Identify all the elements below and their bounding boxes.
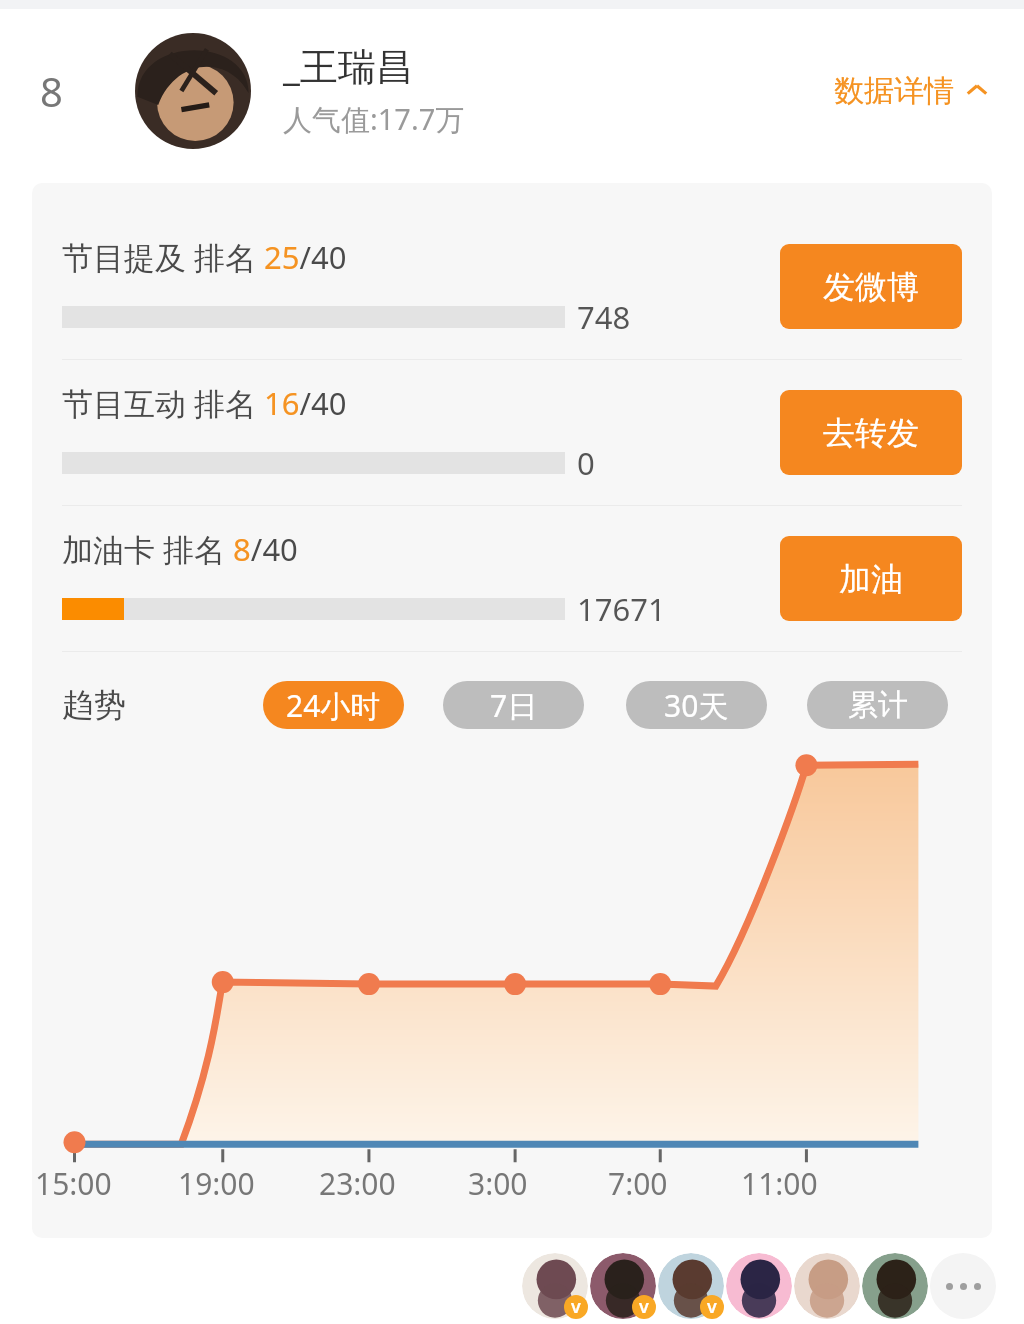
staticText: 24小时 <box>286 685 381 726</box>
staticText: 0 <box>577 442 595 484</box>
staticText: 3:00 <box>468 1163 528 1204</box>
staticText: 23:00 <box>319 1163 396 1204</box>
staticText: 8 <box>40 64 63 118</box>
staticText: 发微博 <box>823 267 919 307</box>
staticText: V <box>639 1297 649 1317</box>
button[interactable]: 30天 <box>626 681 767 729</box>
button[interactable]: Fan avatar 5 <box>794 1253 860 1319</box>
staticText: _王瑞昌 <box>283 39 414 91</box>
button[interactable]: Fan avatar 4 <box>726 1253 792 1319</box>
button[interactable]: Fan avatar 6 <box>862 1253 928 1319</box>
staticText: 15:00 <box>35 1163 112 1204</box>
staticText: 7:00 <box>608 1163 668 1204</box>
staticText: V <box>571 1297 581 1317</box>
button[interactable]: 7日 <box>443 681 584 729</box>
button[interactable]: Fan avatar 2 <box>590 1253 656 1319</box>
staticText: 人气值:17.7万 <box>283 99 465 139</box>
button[interactable]: 发微博 <box>780 244 962 329</box>
staticText: 数据详情 <box>834 72 954 110</box>
staticText: 累计 <box>848 686 908 724</box>
staticText: 加油卡 排名 8/40 <box>62 528 298 570</box>
button[interactable]: Fan avatar 1 <box>522 1253 588 1319</box>
staticText: 19:00 <box>178 1163 255 1204</box>
button[interactable]: More fans <box>930 1253 996 1319</box>
button[interactable]: Profile avatar <box>135 33 251 149</box>
button[interactable]: 24小时 <box>263 681 404 729</box>
staticText: 去转发 <box>823 413 919 453</box>
staticText: 30天 <box>664 685 729 726</box>
button[interactable]: Fan avatar 3 <box>658 1253 724 1319</box>
button[interactable]: 加油 <box>780 536 962 621</box>
button[interactable]: 累计 <box>807 681 948 729</box>
button[interactable]: 数据详情 <box>834 72 988 110</box>
staticText: 节目提及 排名 25/40 <box>62 236 347 278</box>
button[interactable]: 去转发 <box>780 390 962 475</box>
staticText: 节目互动 排名 16/40 <box>62 382 347 424</box>
staticText: 748 <box>577 296 631 338</box>
staticText: 11:00 <box>741 1163 818 1204</box>
staticText: V <box>707 1297 717 1317</box>
staticText: 趋势 <box>62 685 126 725</box>
staticText: 7日 <box>490 685 538 726</box>
staticText: 加油 <box>839 559 903 599</box>
staticText: 17671 <box>577 588 666 630</box>
